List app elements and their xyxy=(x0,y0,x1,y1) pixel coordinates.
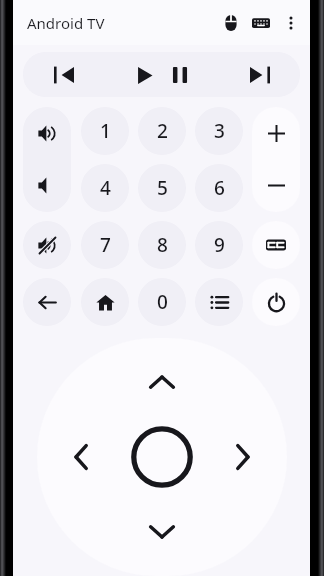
staticText: 8 xyxy=(157,232,168,258)
staticText: 7 xyxy=(100,232,111,258)
button[interactable]: Channel down xyxy=(252,159,300,212)
staticText: 1 xyxy=(100,118,111,144)
button[interactable]: 2 xyxy=(138,107,186,155)
button[interactable]: 9 xyxy=(195,221,243,269)
button[interactable]: Power xyxy=(252,278,300,326)
staticText: 9 xyxy=(214,232,225,258)
staticText: 3 xyxy=(214,118,225,144)
button[interactable]: Up xyxy=(135,356,189,410)
button[interactable]: 7 xyxy=(81,221,129,269)
staticText: 6 xyxy=(214,175,225,201)
button[interactable]: Pause xyxy=(163,58,197,92)
button[interactable]: Down xyxy=(135,504,189,558)
staticText: 2 xyxy=(157,118,168,144)
button[interactable]: 8 xyxy=(138,221,186,269)
button[interactable]: Left xyxy=(55,430,109,484)
button[interactable]: Guide xyxy=(195,278,243,326)
staticText: 0 xyxy=(157,289,168,315)
button[interactable]: 6 xyxy=(195,164,243,212)
button[interactable]: Previous xyxy=(23,52,105,97)
staticText: Android TV xyxy=(27,13,105,33)
button[interactable]: 3 xyxy=(195,107,243,155)
button[interactable]: More options xyxy=(276,8,306,38)
button[interactable]: Closed captions xyxy=(252,221,300,269)
button[interactable]: Play xyxy=(127,58,161,92)
button[interactable]: Touchpad xyxy=(216,8,246,38)
button[interactable]: Back xyxy=(23,278,71,326)
staticText: 4 xyxy=(100,175,111,201)
button[interactable]: Keyboard xyxy=(246,8,276,38)
button[interactable]: Mute xyxy=(23,221,71,269)
button[interactable]: Volume up xyxy=(23,107,71,159)
button[interactable]: 5 xyxy=(138,164,186,212)
staticText: 5 xyxy=(157,175,168,201)
button[interactable]: Home xyxy=(81,278,129,326)
button[interactable]: 1 xyxy=(81,107,129,155)
button[interactable]: 0 xyxy=(138,278,186,326)
button[interactable]: 4 xyxy=(81,164,129,212)
button[interactable]: Channel up xyxy=(252,107,300,159)
button[interactable]: Select xyxy=(127,422,197,492)
button[interactable]: Next xyxy=(219,52,300,97)
button[interactable]: Right xyxy=(215,430,269,484)
button[interactable]: Volume down xyxy=(23,159,71,212)
